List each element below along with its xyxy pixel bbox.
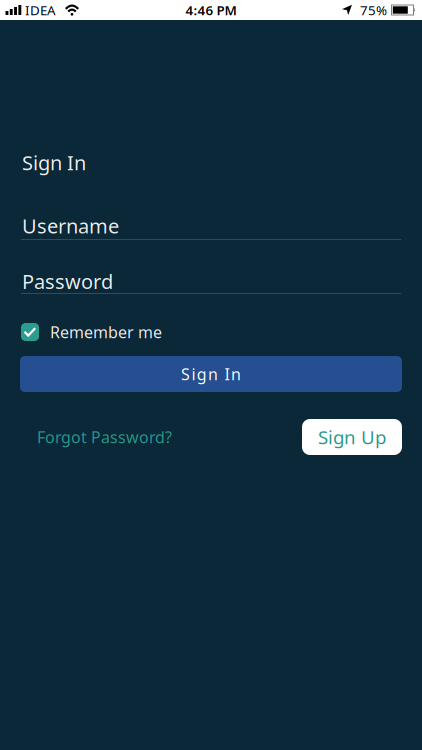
staticText: 4:46 PM bbox=[185, 1, 236, 19]
button[interactable]: Forgot Password? bbox=[37, 426, 172, 448]
staticText: Sign In bbox=[22, 149, 86, 176]
staticText: Remember me bbox=[50, 321, 162, 343]
staticText: Sign In bbox=[181, 363, 241, 385]
staticText: IDEA bbox=[25, 1, 56, 19]
staticText: Username bbox=[22, 212, 119, 239]
button[interactable]: Username bbox=[21, 211, 401, 241]
button[interactable]: Sign In bbox=[20, 356, 402, 392]
staticText: Sign Up bbox=[318, 425, 386, 449]
staticText: Forgot Password? bbox=[37, 426, 172, 448]
staticText: 75% bbox=[360, 1, 387, 19]
button[interactable]: Remember me bbox=[21, 321, 401, 343]
staticText: Password bbox=[22, 268, 113, 295]
button[interactable]: Password bbox=[21, 266, 401, 296]
button[interactable]: Sign Up bbox=[302, 419, 402, 455]
